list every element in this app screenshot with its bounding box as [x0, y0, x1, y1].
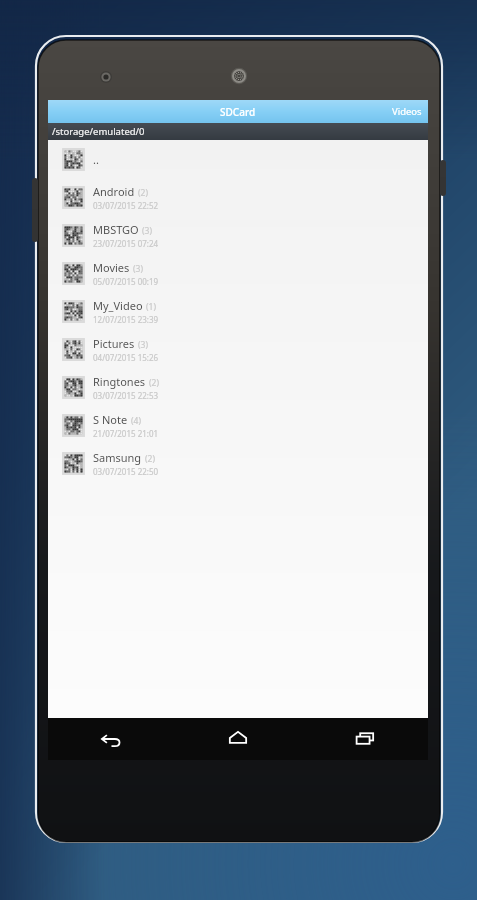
other: Folder [63, 453, 84, 474]
staticText: SDCard [220, 105, 256, 119]
button[interactable]: Folder [48, 140, 428, 178]
button[interactable]: Back [48, 718, 174, 760]
staticText: (4) [131, 415, 141, 427]
other: Folder [63, 187, 84, 208]
staticText: .. [93, 152, 99, 167]
button[interactable]: Recent apps [301, 718, 428, 760]
staticText: 05/07/2015 00:19 [93, 276, 159, 287]
button[interactable]: Folder [48, 292, 428, 330]
staticText: (3) [133, 263, 143, 275]
button[interactable]: Videos [386, 102, 428, 121]
other: Folder [63, 415, 84, 436]
staticText: Movies [93, 260, 130, 275]
staticText: S Note [93, 412, 128, 427]
other: Folder [63, 377, 84, 398]
staticText: MBSTGO [93, 222, 139, 237]
staticText: (3) [142, 225, 152, 237]
staticText: (3) [138, 339, 148, 351]
staticText: Pictures [93, 336, 135, 351]
button[interactable]: /storage/emulated/0 [48, 123, 428, 140]
staticText: 03/07/2015 22:53 [93, 390, 159, 401]
button[interactable]: Home [174, 718, 301, 760]
button[interactable]: Folder [48, 406, 428, 444]
button[interactable]: Folder [48, 254, 428, 292]
staticText: 04/07/2015 15:26 [93, 352, 159, 363]
button[interactable]: Folder [48, 330, 428, 368]
staticText: (1) [146, 301, 156, 313]
staticText: Videos [392, 105, 422, 118]
other: Folder [63, 149, 84, 170]
staticText: (2) [138, 187, 148, 199]
button[interactable]: Folder [48, 216, 428, 254]
staticText: 03/07/2015 22:52 [93, 200, 159, 211]
staticText: 23/07/2015 07:24 [93, 238, 159, 249]
staticText: (2) [149, 377, 159, 389]
other: Folder [63, 339, 84, 360]
button[interactable]: Folder [48, 444, 428, 482]
other: Folder [63, 263, 84, 284]
button[interactable]: Folder [48, 368, 428, 406]
staticText: Samsung [93, 450, 142, 465]
staticText: 03/07/2015 22:50 [93, 466, 159, 477]
staticText: (2) [145, 453, 155, 465]
button[interactable]: Folder [48, 178, 428, 216]
staticText: My_Video [93, 298, 143, 313]
staticText: 12/07/2015 23:39 [93, 314, 159, 325]
staticText: Android [93, 184, 135, 199]
other: Folder [63, 301, 84, 322]
staticText: 21/07/2015 21:01 [93, 428, 159, 439]
other: Folder [63, 225, 84, 246]
staticText: /storage/emulated/0 [52, 125, 145, 138]
staticText: Ringtones [93, 374, 146, 389]
